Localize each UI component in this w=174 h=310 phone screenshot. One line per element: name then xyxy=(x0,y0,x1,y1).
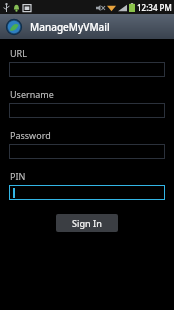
button[interactable] xyxy=(9,185,165,200)
staticText: Sign In xyxy=(72,217,102,229)
button[interactable]: Sign In xyxy=(56,214,118,232)
staticText: PIN xyxy=(10,170,26,182)
button[interactable]: App icon xyxy=(5,18,23,36)
staticText: Username xyxy=(10,88,54,100)
button[interactable] xyxy=(9,144,165,159)
staticText: ManageMyVMail xyxy=(30,20,110,34)
button[interactable] xyxy=(9,62,165,77)
staticText: Password xyxy=(10,129,51,141)
staticText: 12:34 PM xyxy=(137,2,172,13)
staticText: URL xyxy=(10,47,27,59)
button[interactable] xyxy=(9,103,165,118)
